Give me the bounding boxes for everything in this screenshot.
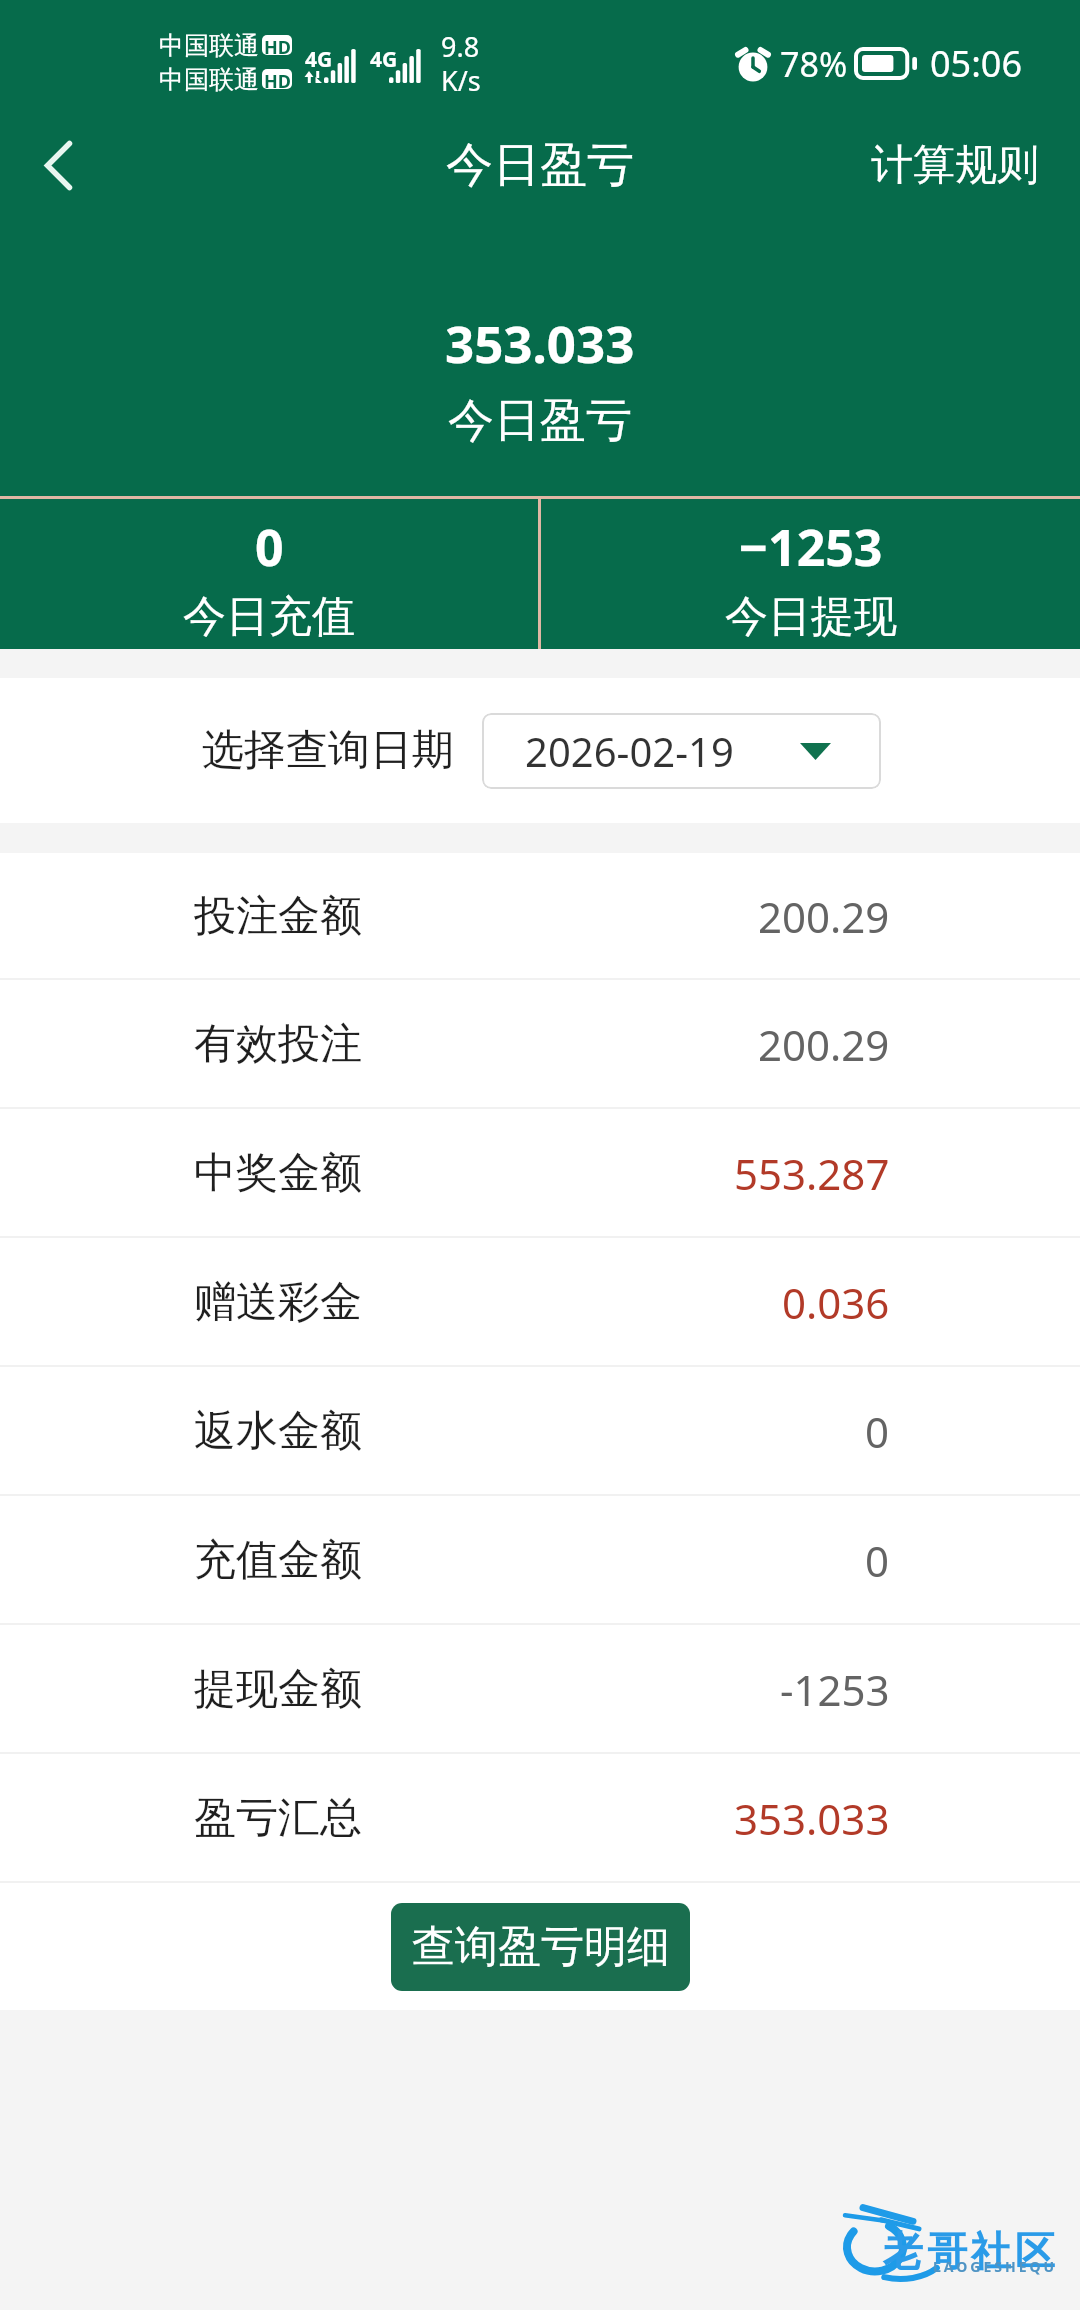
button[interactable]: 充值金额 <box>0 1496 1080 1625</box>
staticText: 投注金额 <box>194 890 362 943</box>
staticText: 充值金额 <box>194 1534 362 1587</box>
button[interactable]: 返水金额 <box>0 1367 1080 1496</box>
staticText: -1253 <box>780 1661 890 1718</box>
staticText: −1253 <box>739 513 883 581</box>
button[interactable]: −1253 <box>541 499 1080 649</box>
staticText: 中国联通 <box>159 30 259 61</box>
staticText: 200.29 <box>758 888 890 945</box>
staticText: 200.29 <box>758 1016 890 1073</box>
staticText: 0 <box>255 513 284 581</box>
staticText: 0 <box>865 1403 890 1460</box>
staticText: 今日提现 <box>725 590 897 644</box>
staticText: K/s <box>441 62 481 96</box>
staticText: 353.033 <box>734 1790 890 1847</box>
staticText: 盈亏汇总 <box>194 1792 362 1845</box>
staticText: 2026-02-19 <box>525 724 734 778</box>
staticText: 提现金额 <box>194 1663 362 1716</box>
staticText: 4G <box>305 45 333 74</box>
button[interactable]: 有效投注 <box>0 980 1080 1109</box>
staticText: 78% <box>780 41 848 87</box>
staticText: 今日盈亏 <box>446 136 634 195</box>
button[interactable]: 提现金额 <box>0 1625 1080 1754</box>
staticText: 中奖金额 <box>194 1147 362 1200</box>
staticText: HD <box>264 35 291 55</box>
staticText: 老哥社区 <box>881 2226 1057 2276</box>
staticText: 中国联通 <box>159 64 259 95</box>
staticText: 0 <box>865 1532 890 1589</box>
staticText: 今日充值 <box>183 590 355 644</box>
button[interactable]: 2026-02-19 <box>482 713 881 789</box>
staticText: LAOGESHEQU <box>933 2257 1058 2276</box>
button[interactable]: 中奖金额 <box>0 1109 1080 1238</box>
staticText: 赠送彩金 <box>194 1276 362 1329</box>
button[interactable]: 赠送彩金 <box>0 1238 1080 1367</box>
button[interactable]: Back <box>22 129 94 201</box>
button[interactable]: 计算规则 <box>871 139 1080 192</box>
staticText: 计算规则 <box>871 139 1039 192</box>
staticText: 查询盈亏明细 <box>412 1920 670 1974</box>
staticText: 553.287 <box>734 1145 890 1202</box>
staticText: 今日盈亏 <box>448 392 632 450</box>
staticText: HD <box>264 69 291 89</box>
staticText: 9.8 <box>441 28 480 62</box>
button[interactable]: 查询盈亏明细 <box>391 1903 690 1991</box>
staticText: 选择查询日期 <box>202 724 454 777</box>
button[interactable]: 盈亏汇总 <box>0 1754 1080 1883</box>
staticText: 有效投注 <box>194 1018 362 1071</box>
staticText: 0.036 <box>782 1274 890 1331</box>
staticText: 05:06 <box>930 39 1023 88</box>
button[interactable]: 投注金额 <box>0 853 1080 980</box>
staticText: 返水金额 <box>194 1405 362 1458</box>
staticText: 353.033 <box>445 308 635 377</box>
staticText: 4G <box>370 45 398 74</box>
button[interactable]: 0 <box>0 499 538 649</box>
